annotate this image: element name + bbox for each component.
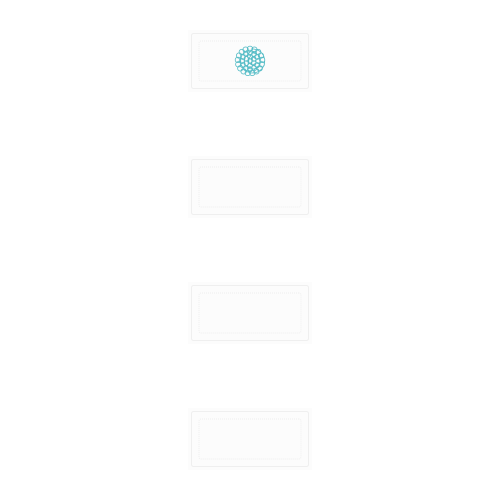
button[interactable]: Open: [188, 30, 312, 92]
